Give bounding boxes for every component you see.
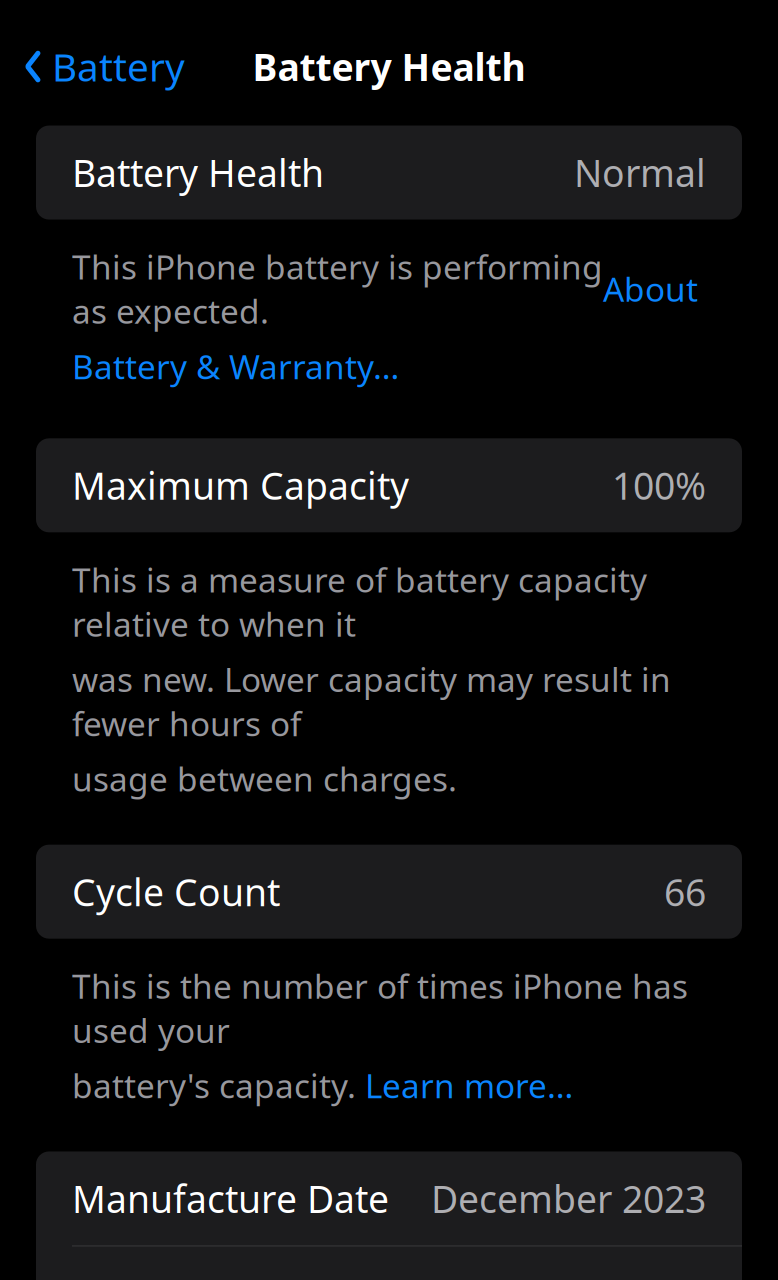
button[interactable]: Cycle Count	[36, 845, 742, 939]
staticText: Normal	[574, 148, 706, 197]
staticText: Battery Health	[252, 42, 525, 91]
button[interactable]: Manufacture Date	[36, 1151, 742, 1245]
staticText: 100%	[612, 460, 706, 510]
staticText: battery's capacity.	[72, 1063, 365, 1107]
button[interactable]: Battery Health	[36, 125, 742, 219]
staticText: This is a measure of battery capacity re…	[72, 557, 647, 646]
staticText: About	[603, 267, 698, 311]
button[interactable]: Maximum Capacity	[36, 438, 742, 532]
staticText: Battery Health	[72, 148, 324, 197]
staticText: was new. Lower capacity may result in fe…	[72, 657, 671, 745]
staticText: Battery & Warranty…	[72, 344, 399, 388]
staticText: Battery	[52, 41, 185, 92]
staticText: December 2023	[431, 1174, 706, 1223]
staticText: Cycle Count	[72, 867, 280, 916]
staticText: Manufacture Date	[72, 1174, 389, 1223]
staticText: Maximum Capacity	[72, 460, 409, 510]
staticText: 66	[664, 867, 706, 916]
staticText: This is the number of times iPhone has u…	[72, 964, 688, 1052]
button[interactable]: Battery	[0, 33, 185, 100]
staticText: Learn more…	[365, 1063, 573, 1107]
staticText: usage between charges.	[72, 756, 457, 801]
staticText: This iPhone battery is performing as exp…	[72, 244, 603, 333]
